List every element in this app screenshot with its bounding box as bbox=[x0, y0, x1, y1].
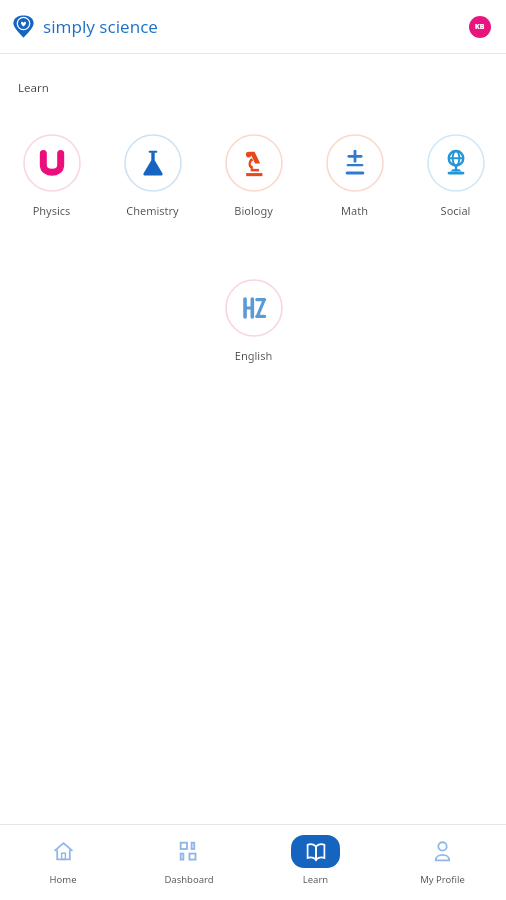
staticText: Math bbox=[307, 203, 402, 218]
staticText: Dashboard bbox=[126, 873, 252, 886]
button[interactable]: Dashboard bbox=[126, 833, 252, 888]
button[interactable]: Social bbox=[408, 132, 503, 220]
button[interactable]: Physics bbox=[4, 132, 99, 220]
staticText: Social bbox=[408, 203, 503, 218]
button[interactable]: Biology bbox=[206, 132, 301, 220]
staticText: Chemistry bbox=[105, 203, 200, 218]
staticText: Learn bbox=[252, 873, 379, 886]
staticText: My Profile bbox=[379, 873, 506, 886]
button[interactable]: Profile KB bbox=[469, 16, 491, 38]
button[interactable]: Learn bbox=[252, 833, 379, 888]
staticText: English bbox=[206, 348, 301, 363]
staticText: Learn bbox=[18, 80, 49, 96]
button[interactable]: Chemistry bbox=[105, 132, 200, 220]
staticText: simply science bbox=[43, 15, 158, 38]
button[interactable]: My Profile bbox=[379, 833, 506, 888]
staticText: Home bbox=[0, 873, 126, 886]
staticText: Physics bbox=[4, 203, 99, 218]
staticText: KB bbox=[475, 22, 485, 32]
button[interactable]: simply science bbox=[12, 15, 158, 38]
button[interactable]: Math bbox=[307, 132, 402, 220]
staticText: Biology bbox=[206, 203, 301, 218]
button[interactable]: Home bbox=[0, 833, 126, 888]
button[interactable]: English bbox=[206, 277, 301, 365]
